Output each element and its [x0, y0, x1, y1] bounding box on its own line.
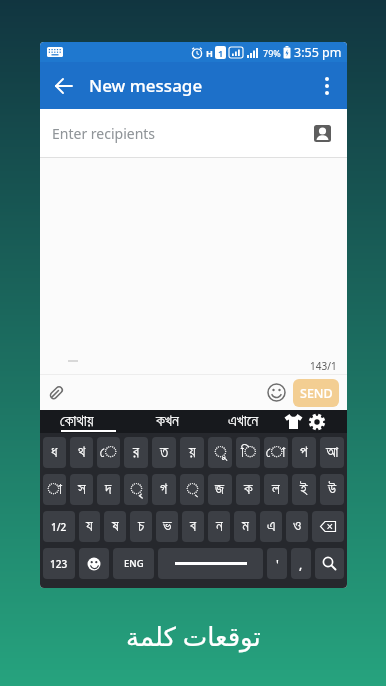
button[interactable]: এখানে: [228, 410, 259, 433]
button[interactable]: 1/2: [43, 511, 75, 542]
staticText: ই: [300, 482, 308, 497]
button[interactable]: ে: [97, 437, 120, 468]
staticText: ক: [244, 482, 253, 497]
button[interactable]: [158, 548, 263, 579]
button[interactable]: [315, 548, 344, 579]
button[interactable]: ক: [236, 474, 260, 505]
button[interactable]: য়: [180, 437, 204, 468]
staticText: Enter recipients: [52, 124, 156, 143]
button[interactable]: ত: [152, 437, 176, 468]
button[interactable]: ENG: [113, 548, 154, 579]
button[interactable]: [40, 375, 72, 410]
staticText: ্: [186, 482, 199, 497]
staticText: ে: [100, 445, 117, 460]
button[interactable]: ো: [264, 437, 288, 468]
button[interactable]: য: [79, 511, 100, 542]
staticText: ন: [216, 519, 223, 534]
staticText: ,: [299, 556, 303, 572]
button[interactable]: [79, 548, 109, 579]
staticText: 143/1: [310, 359, 337, 373]
staticText: এখানে: [228, 414, 259, 430]
button[interactable]: ব: [182, 511, 204, 542]
staticText: ৃ: [130, 482, 143, 497]
button[interactable]: ৃ: [124, 474, 148, 505]
button[interactable]: স: [70, 474, 93, 505]
staticText: গ: [160, 482, 168, 497]
button[interactable]: চ: [130, 511, 152, 542]
button[interactable]: জ: [208, 474, 232, 505]
button[interactable]: ্: [180, 474, 204, 505]
staticText: এ: [267, 519, 276, 534]
button[interactable]: কোথায়: [60, 410, 94, 433]
button[interactable]: [40, 62, 87, 109]
staticText: ষ: [112, 519, 119, 534]
button[interactable]: ু: [208, 437, 232, 468]
staticText: ব: [190, 519, 196, 534]
button[interactable]: ': [267, 548, 287, 579]
staticText: া: [47, 482, 62, 497]
button[interactable]: ল: [264, 474, 288, 505]
staticText: উ: [328, 482, 337, 497]
staticText: আ: [326, 445, 339, 460]
staticText: ENG: [124, 557, 144, 570]
staticText: র: [133, 445, 139, 460]
staticText: ি: [241, 445, 256, 460]
staticText: H: [206, 47, 213, 59]
staticText: দ: [105, 482, 112, 497]
button[interactable]: SEND: [293, 379, 339, 407]
button[interactable]: ষ: [104, 511, 126, 542]
staticText: New message: [89, 74, 203, 97]
button[interactable]: 123: [43, 548, 75, 579]
staticText: 3:55 pm: [294, 44, 342, 61]
button[interactable]: ধ: [43, 437, 66, 468]
button[interactable]: [280, 410, 306, 433]
button[interactable]: Enter recipients: [40, 109, 347, 158]
button[interactable]: ন: [208, 511, 230, 542]
button[interactable]: ই: [292, 474, 316, 505]
staticText: য: [86, 519, 93, 534]
staticText: জ: [215, 482, 225, 497]
button[interactable]: ম: [234, 511, 256, 542]
staticText: 79%: [263, 47, 281, 59]
staticText: ': [276, 556, 279, 572]
staticText: প: [300, 445, 308, 460]
staticText: SEND: [300, 385, 333, 402]
staticText: ম: [242, 519, 249, 534]
staticText: 123: [50, 557, 68, 571]
button[interactable]: দ: [97, 474, 120, 505]
button[interactable]: [259, 375, 293, 410]
staticText: 1/2: [51, 520, 67, 534]
staticText: ধ: [51, 445, 58, 460]
button[interactable]: উ: [320, 474, 344, 505]
staticText: কোথায়: [60, 414, 94, 430]
staticText: توقعات كلمة: [126, 618, 261, 653]
button[interactable]: প: [292, 437, 316, 468]
button[interactable]: [312, 511, 344, 542]
button[interactable]: এ: [260, 511, 282, 542]
staticText: থ: [78, 445, 86, 460]
staticText: য়: [189, 445, 196, 460]
button[interactable]: [307, 62, 347, 109]
staticText: চ: [138, 519, 145, 534]
staticText: ত: [160, 445, 169, 460]
staticText: ভ: [163, 519, 172, 534]
button[interactable]: থ: [70, 437, 93, 468]
button[interactable]: কখন: [156, 410, 179, 433]
button[interactable]: ি: [236, 437, 260, 468]
button[interactable]: ও: [286, 511, 308, 542]
button[interactable]: া: [43, 474, 66, 505]
staticText: 1: [218, 47, 224, 59]
button[interactable]: ,: [291, 548, 311, 579]
staticText: কখন: [156, 414, 179, 430]
staticText: ো: [266, 445, 286, 460]
button[interactable]: [304, 410, 330, 433]
staticText: ু: [214, 445, 227, 460]
staticText: স: [78, 482, 86, 497]
button[interactable]: ভ: [156, 511, 178, 542]
button[interactable]: গ: [152, 474, 176, 505]
button[interactable]: আ: [320, 437, 344, 468]
button[interactable]: র: [124, 437, 148, 468]
staticText: ও: [293, 519, 302, 534]
staticText: ল: [272, 482, 280, 497]
